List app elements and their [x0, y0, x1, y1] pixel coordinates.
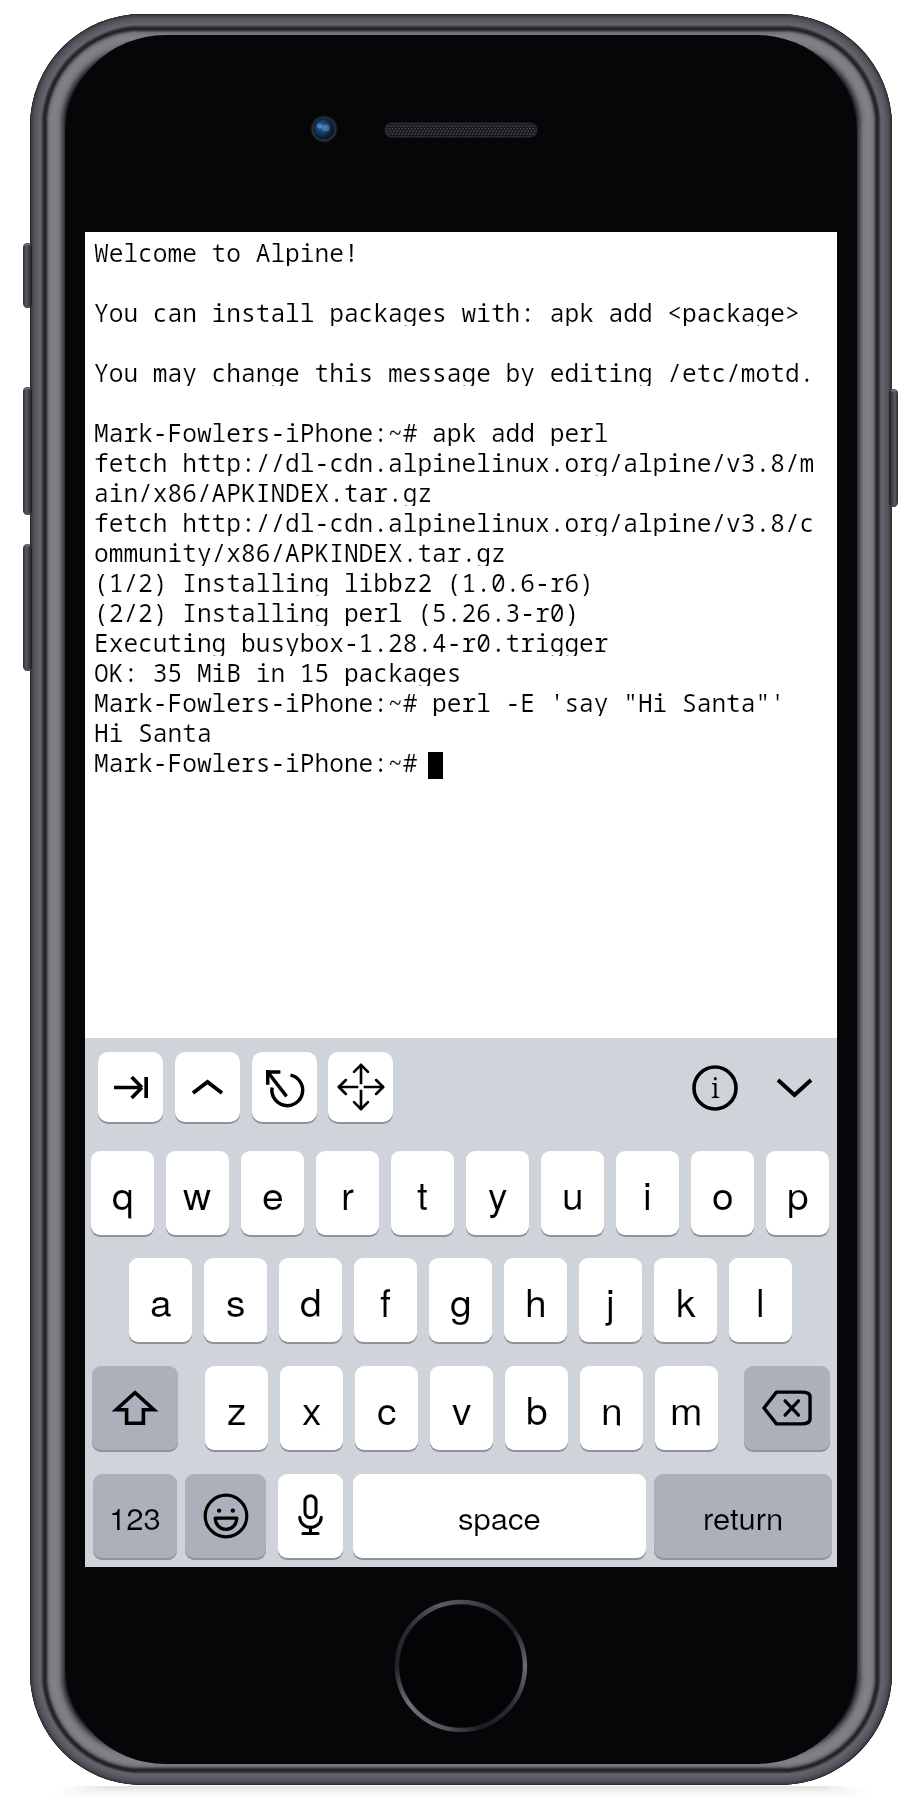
- staticText: Mark-Fowlers-iPhone:~# apk add perl: [94, 416, 609, 446]
- staticText: g: [450, 1272, 472, 1328]
- staticText: n: [601, 1380, 623, 1436]
- staticText: z: [227, 1380, 247, 1436]
- button[interactable]: j: [579, 1258, 642, 1342]
- button[interactable]: return: [654, 1474, 832, 1558]
- staticText: fetch http://dl-cdn.alpinelinux.org/alpi…: [94, 446, 815, 476]
- button[interactable]: g: [429, 1258, 492, 1342]
- button[interactable]: space: [353, 1474, 646, 1558]
- button[interactable]: v: [430, 1366, 493, 1450]
- staticText: r: [341, 1165, 354, 1221]
- staticText: h: [525, 1272, 547, 1328]
- button[interactable]: s: [204, 1258, 267, 1342]
- button[interactable]: k: [654, 1258, 717, 1342]
- button[interactable]: d: [279, 1258, 342, 1342]
- staticText: j: [606, 1272, 615, 1328]
- staticText: (2/2) Installing perl (5.26.3-r0): [94, 596, 580, 626]
- staticText: Executing busybox-1.28.4-r0.trigger: [94, 626, 609, 656]
- button[interactable]: Emoji: [185, 1474, 266, 1558]
- button[interactable]: c: [355, 1366, 418, 1450]
- button[interactable]: t: [391, 1151, 454, 1235]
- staticText: y: [488, 1165, 508, 1221]
- staticText: ain/x86/APKINDEX.tar.gz: [94, 476, 433, 506]
- button[interactable]: a: [129, 1258, 192, 1342]
- button[interactable]: h: [504, 1258, 567, 1342]
- staticText: k: [676, 1272, 696, 1328]
- staticText: c: [377, 1380, 397, 1436]
- button[interactable]: Arrow keys: [328, 1052, 393, 1122]
- staticText: Welcome to Alpine!: [94, 236, 359, 266]
- staticText: Mark-Fowlers-iPhone:~# perl -E 'say "Hi …: [94, 686, 785, 716]
- staticText: space: [458, 1494, 541, 1538]
- staticText: x: [302, 1380, 322, 1436]
- staticText: Mark-Fowlers-iPhone:~#: [94, 746, 433, 776]
- button[interactable]: Info: [687, 1060, 742, 1115]
- button[interactable]: e: [241, 1151, 304, 1235]
- button[interactable]: u: [541, 1151, 604, 1235]
- button[interactable]: Tab: [98, 1052, 163, 1122]
- staticText: t: [417, 1165, 428, 1221]
- staticText: s: [226, 1272, 246, 1328]
- button[interactable]: x: [280, 1366, 343, 1450]
- staticText: p: [787, 1165, 809, 1221]
- button[interactable]: Shift: [92, 1366, 178, 1450]
- staticText: l: [756, 1272, 765, 1328]
- button[interactable]: Hide keyboard: [767, 1060, 822, 1115]
- staticText: f: [380, 1272, 391, 1328]
- staticText: Hi Santa: [94, 716, 212, 746]
- staticText: You may change this message by editing /…: [94, 356, 815, 386]
- staticText: i: [711, 1069, 720, 1106]
- staticText: w: [183, 1165, 212, 1221]
- staticText: d: [300, 1272, 322, 1328]
- staticText: i: [643, 1165, 652, 1221]
- button[interactable]: Backspace: [744, 1366, 830, 1450]
- button[interactable]: l: [729, 1258, 792, 1342]
- staticText: (1/2) Installing libbz2 (1.0.6-r6): [94, 566, 594, 596]
- staticText: b: [526, 1380, 548, 1436]
- staticText: return: [703, 1494, 784, 1538]
- button[interactable]: i: [616, 1151, 679, 1235]
- button[interactable]: n: [580, 1366, 643, 1450]
- staticText: e: [262, 1165, 284, 1221]
- button[interactable]: o: [691, 1151, 754, 1235]
- staticText: You can install packages with: apk add <…: [94, 296, 800, 326]
- button[interactable]: z: [205, 1366, 268, 1450]
- staticText: OK: 35 MiB in 15 packages: [94, 656, 462, 686]
- staticText: a: [150, 1272, 172, 1328]
- staticText: ommunity/x86/APKINDEX.tar.gz: [94, 536, 506, 566]
- button[interactable]: Undo: [252, 1052, 317, 1122]
- button[interactable]: q: [91, 1151, 154, 1235]
- button[interactable]: m: [655, 1366, 718, 1450]
- button[interactable]: Dictate: [278, 1474, 343, 1558]
- button[interactable]: p: [766, 1151, 829, 1235]
- staticText: u: [562, 1165, 584, 1221]
- staticText: o: [712, 1165, 734, 1221]
- button[interactable]: Control: [175, 1052, 240, 1122]
- staticText: v: [452, 1380, 472, 1436]
- button[interactable]: w: [166, 1151, 229, 1235]
- button[interactable]: y: [466, 1151, 529, 1235]
- staticText: 123: [109, 1494, 161, 1538]
- button[interactable]: r: [316, 1151, 379, 1235]
- button[interactable]: b: [505, 1366, 568, 1450]
- button[interactable]: f: [354, 1258, 417, 1342]
- staticText: m: [670, 1380, 703, 1436]
- staticText: fetch http://dl-cdn.alpinelinux.org/alpi…: [94, 506, 815, 536]
- staticText: q: [112, 1165, 134, 1221]
- button[interactable]: 123: [93, 1474, 177, 1558]
